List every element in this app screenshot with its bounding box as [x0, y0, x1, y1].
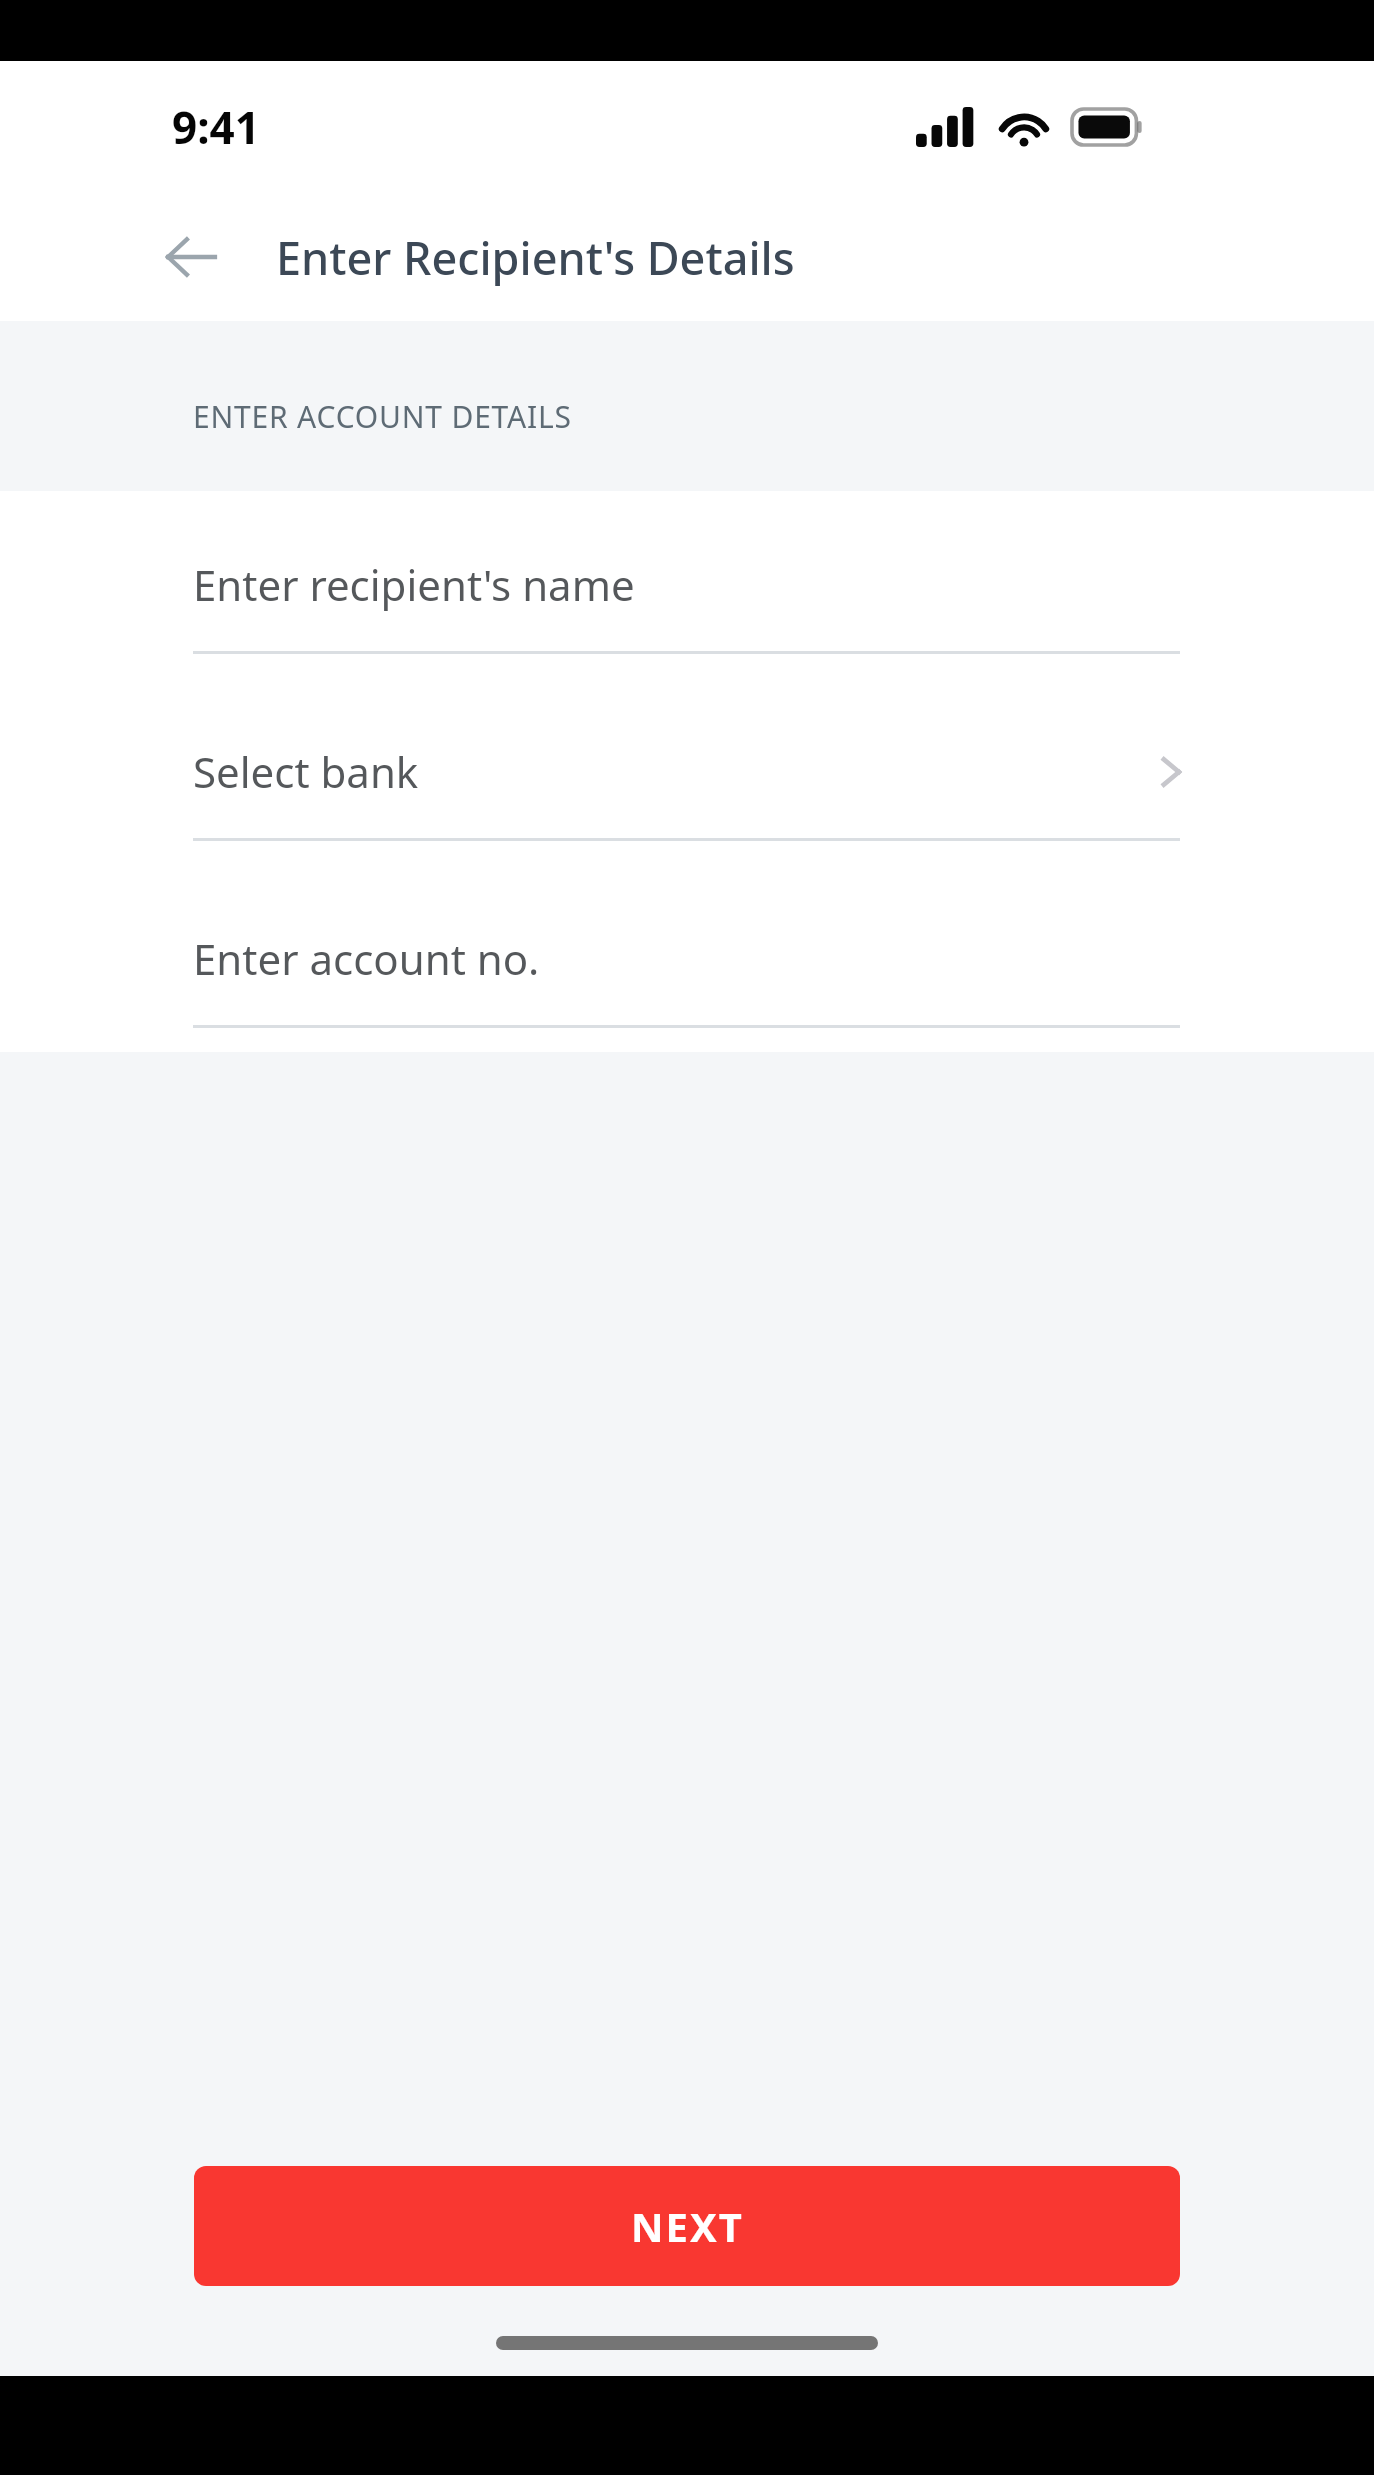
- staticText: Enter account no.: [193, 930, 540, 987]
- button[interactable]: Enter account no.: [0, 865, 1374, 1052]
- button[interactable]: Back: [160, 226, 222, 288]
- staticText: ENTER ACCOUNT DETAILS: [193, 396, 572, 437]
- button[interactable]: NEXT: [194, 2166, 1180, 2286]
- staticText: Enter Recipient's Details: [276, 227, 795, 288]
- button[interactable]: Enter recipient's name: [0, 491, 1374, 678]
- staticText: Enter recipient's name: [193, 556, 635, 613]
- staticText: Select bank: [193, 743, 419, 800]
- staticText: NEXT: [631, 2199, 744, 2253]
- button[interactable]: Select bank: [0, 678, 1374, 865]
- other: Select bank: [1143, 744, 1199, 800]
- staticText: 9:41: [172, 97, 260, 157]
